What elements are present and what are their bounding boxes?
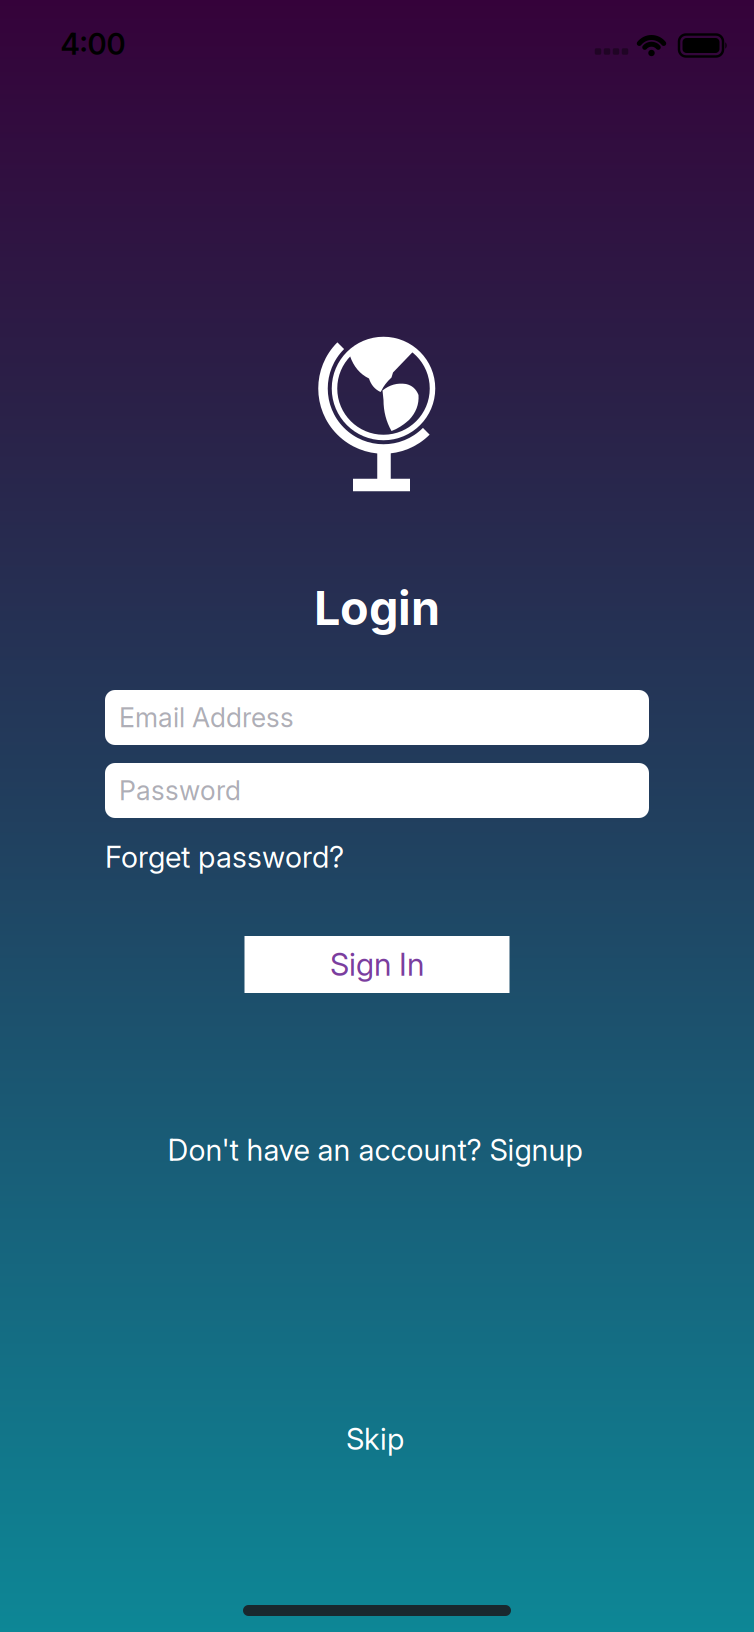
button[interactable]: Don't have an account? Signup [167, 1133, 582, 1167]
staticText: Sign In [330, 946, 424, 983]
staticText: Login [314, 580, 440, 636]
staticText: Skip [346, 1422, 404, 1456]
staticText: Don't have an account? Signup [167, 1133, 582, 1167]
staticText: Password [119, 775, 241, 806]
button[interactable]: Email Address [105, 690, 649, 745]
button[interactable]: Forget password? [105, 840, 649, 874]
staticText: 4:00 [60, 27, 125, 61]
button[interactable]: Sign In [244, 936, 509, 993]
button[interactable]: Password [105, 763, 649, 818]
staticText: Email Address [119, 702, 294, 733]
staticText: Forget password? [105, 840, 344, 874]
button[interactable]: Skip [346, 1422, 404, 1456]
